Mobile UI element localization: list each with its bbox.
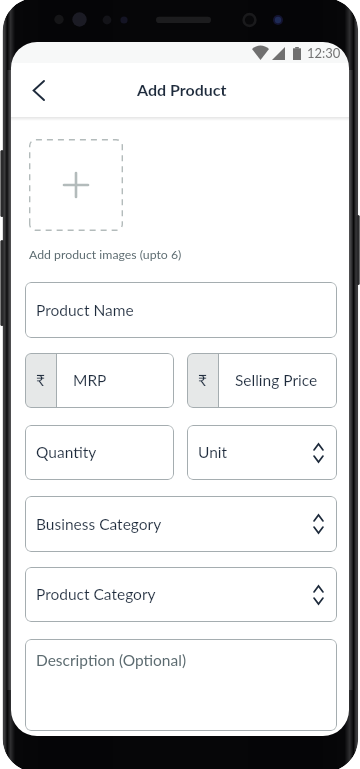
staticText: Business Category xyxy=(36,515,162,534)
button[interactable]: Product Category xyxy=(25,567,337,622)
button[interactable]: Business Category xyxy=(25,496,337,552)
staticText: Selling Price xyxy=(235,371,318,390)
staticText: ₹ xyxy=(36,371,45,390)
button[interactable]: Unit xyxy=(187,425,337,480)
staticText: Product Name xyxy=(36,301,134,320)
staticText: Description (Optional) xyxy=(36,651,187,670)
button[interactable]: Quantity xyxy=(25,425,174,480)
button[interactable]: Back xyxy=(19,71,57,109)
staticText: Add product images (upto 6) xyxy=(29,247,182,262)
staticText: MRP xyxy=(73,371,107,390)
button[interactable]: Product Name xyxy=(25,282,337,338)
staticText: Add Product xyxy=(137,80,227,99)
button[interactable]: Add product image xyxy=(29,139,123,231)
staticText: Product Category xyxy=(36,585,156,604)
staticText: 12:30 xyxy=(307,45,341,61)
button[interactable]: ₹ xyxy=(25,353,174,408)
button[interactable]: ₹ xyxy=(187,353,337,408)
button[interactable]: Description (Optional) xyxy=(25,639,337,731)
staticText: Unit xyxy=(198,443,228,462)
staticText: ₹ xyxy=(198,371,207,390)
staticText: Quantity xyxy=(36,443,97,462)
